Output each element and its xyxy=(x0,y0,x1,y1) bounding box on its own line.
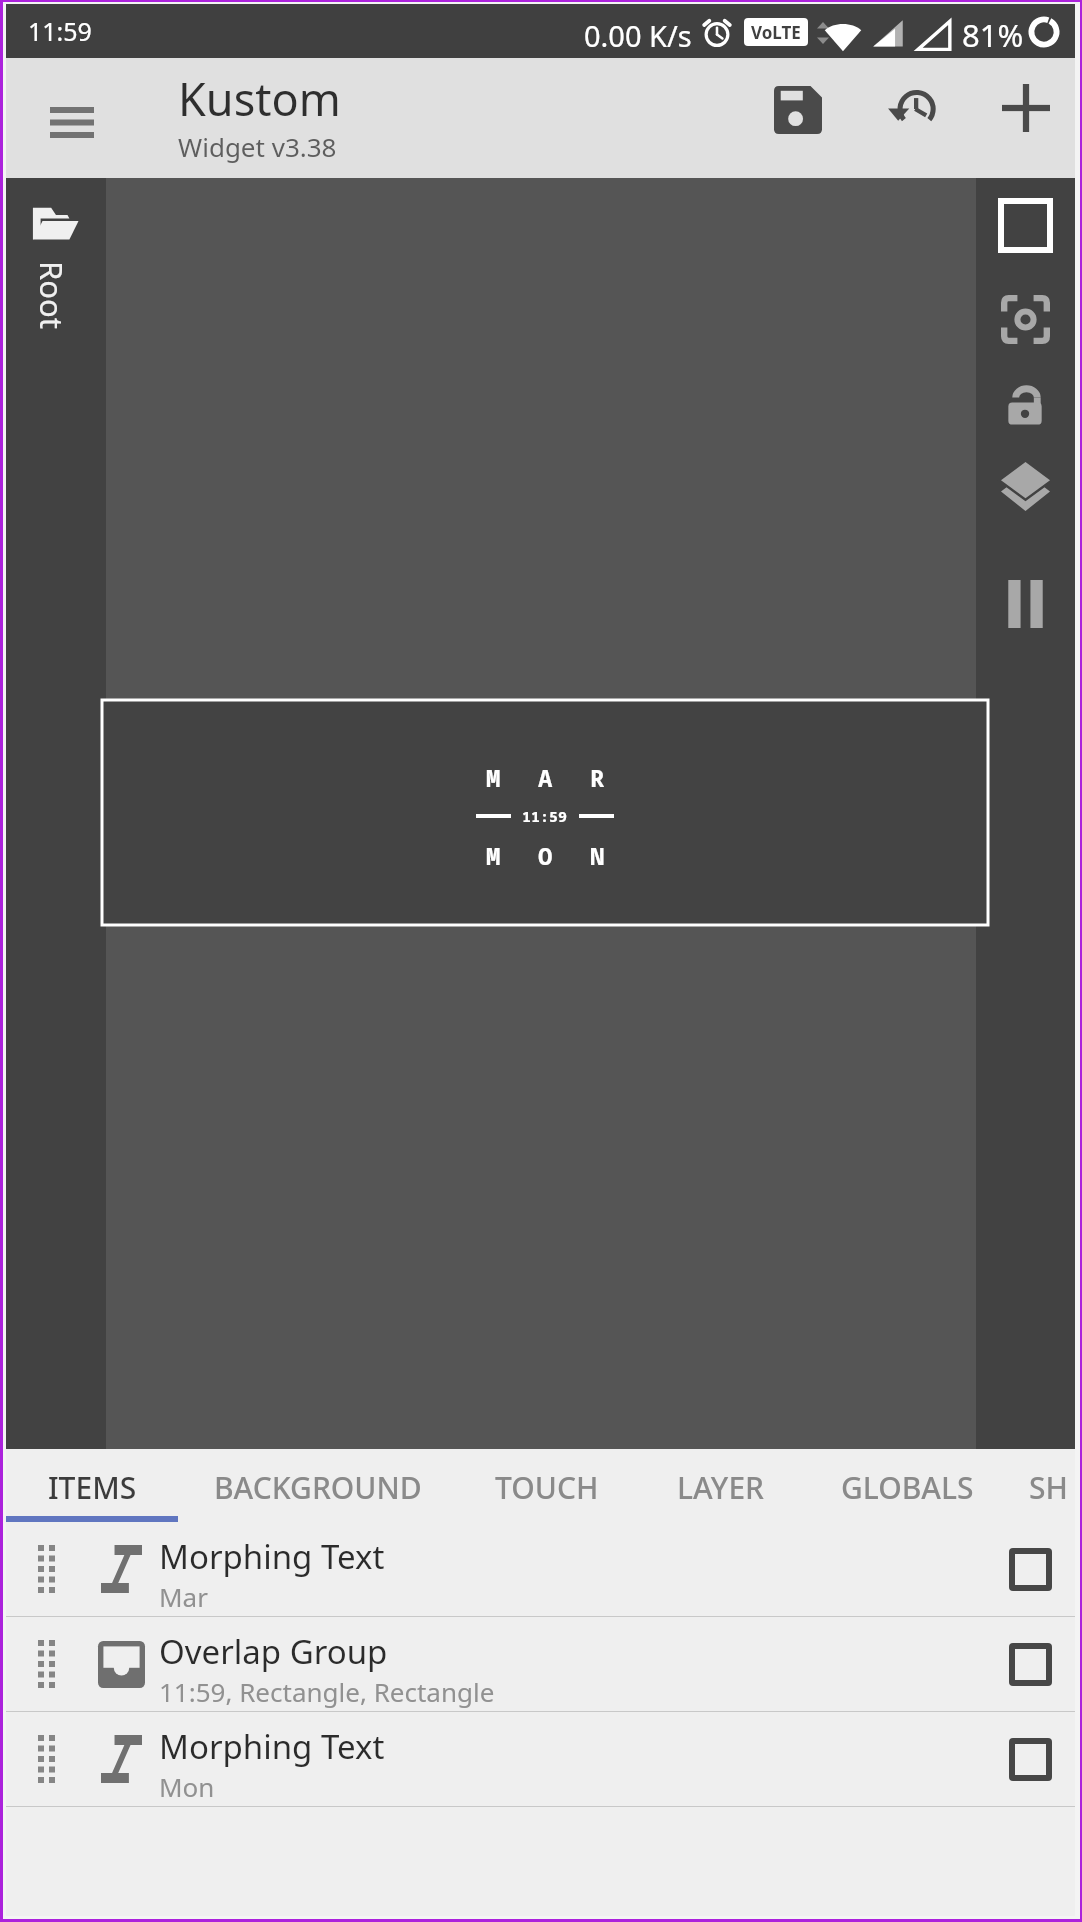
staticText: Mar xyxy=(159,1579,208,1614)
button[interactable]: LAYER xyxy=(636,1449,806,1522)
staticText: Overlap Group xyxy=(159,1629,388,1674)
button[interactable]: ITEMS xyxy=(6,1449,178,1522)
staticText: 11:59 xyxy=(28,14,92,48)
staticText: 11:59 xyxy=(522,806,568,826)
staticText: SH xyxy=(1029,1467,1068,1508)
staticText: Kustom xyxy=(178,68,341,129)
staticText: Morphing Text xyxy=(159,1534,385,1579)
staticText: 11:59, Rectangle, Rectangle xyxy=(159,1674,495,1709)
staticText: GLOBALS xyxy=(841,1467,974,1508)
button[interactable]: Select item xyxy=(985,1524,1075,1614)
staticText: Morphing Text xyxy=(159,1724,385,1769)
button[interactable]: Add xyxy=(976,58,1076,158)
button[interactable]: Menu xyxy=(28,78,116,166)
button[interactable]: Select item xyxy=(985,1619,1075,1709)
staticText: 81% xyxy=(962,14,1024,56)
staticText: O xyxy=(538,839,553,872)
button[interactable]: TOUCH xyxy=(458,1449,636,1522)
staticText: 0.00 K/s xyxy=(584,16,692,55)
staticText: ITEMS xyxy=(48,1467,137,1508)
button[interactable]: History xyxy=(862,59,962,159)
staticText: BACKGROUND xyxy=(214,1467,422,1508)
button[interactable]: Overlap Group xyxy=(6,1617,1075,1711)
staticText: VoLTE xyxy=(751,21,801,44)
staticText: Root xyxy=(31,261,73,329)
staticText: Mon xyxy=(159,1769,215,1804)
staticText: M xyxy=(486,761,501,794)
button[interactable]: Morphing Text xyxy=(6,1712,1075,1806)
button[interactable]: GLOBALS xyxy=(806,1449,1008,1522)
button[interactable]: Save xyxy=(748,60,848,160)
button[interactable]: Pause xyxy=(976,562,1075,646)
button[interactable]: Morphing Text xyxy=(6,1522,1075,1616)
button[interactable]: M xyxy=(102,700,988,925)
button[interactable]: SH xyxy=(1008,1449,1082,1522)
button[interactable]: Root folder xyxy=(6,178,106,1449)
staticText: N xyxy=(590,839,605,872)
button[interactable]: Select item xyxy=(985,1714,1075,1804)
staticText: LAYER xyxy=(677,1467,765,1508)
button[interactable]: BACKGROUND xyxy=(178,1449,458,1522)
staticText: Widget v3.38 xyxy=(178,129,337,164)
button[interactable]: Focus xyxy=(976,277,1075,361)
staticText: TOUCH xyxy=(495,1467,599,1508)
staticText: A xyxy=(538,761,553,794)
button[interactable]: Layers xyxy=(976,444,1075,528)
button[interactable]: Frame xyxy=(976,183,1075,267)
staticText: R xyxy=(590,761,605,794)
button[interactable]: Unlock xyxy=(976,361,1075,445)
staticText: M xyxy=(486,839,501,872)
